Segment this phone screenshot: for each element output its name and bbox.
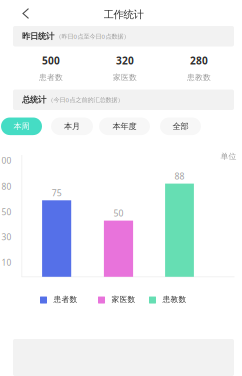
staticText: 单位	[220, 151, 236, 161]
staticText: 500	[42, 54, 60, 67]
staticText: （今日0点之前的汇总数据）	[47, 96, 123, 104]
staticText: 320	[116, 54, 134, 67]
button[interactable]: 本年度	[99, 117, 150, 135]
staticText: 患教数	[162, 295, 186, 304]
staticText: 患者数	[53, 295, 77, 304]
staticText: 家医数	[113, 73, 137, 82]
staticText: 75	[52, 187, 62, 199]
button[interactable]: 全部	[160, 117, 201, 135]
staticText: 本周	[13, 121, 29, 131]
staticText: 本月	[64, 121, 80, 131]
staticText: 88	[174, 170, 184, 182]
staticText: 30	[2, 231, 12, 243]
staticText: 本年度	[112, 121, 136, 131]
staticText: 100	[0, 155, 12, 166]
staticText: 昨日统计	[22, 31, 54, 42]
staticText: 50	[113, 207, 123, 219]
staticText: 患教数	[187, 73, 211, 82]
staticText: 10	[2, 257, 12, 268]
staticText: 280	[190, 54, 208, 67]
staticText: 全部	[172, 121, 188, 131]
staticText: 80	[2, 181, 12, 192]
staticText: 家医数	[111, 295, 135, 304]
button[interactable]: 本月	[51, 117, 93, 135]
staticText: （昨日0点至今日0点数据）	[55, 32, 129, 40]
staticText: 患者数	[39, 73, 63, 82]
button[interactable]: 本周	[1, 117, 42, 135]
staticText: 50	[2, 206, 12, 218]
button[interactable]: Back	[13, 1, 39, 25]
staticText: 总统计	[22, 94, 46, 105]
staticText: 工作统计	[103, 8, 143, 21]
